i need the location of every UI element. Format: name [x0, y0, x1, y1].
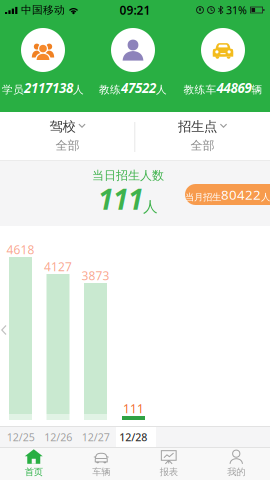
- staticText: 4618: [6, 241, 34, 257]
- staticText: 招生点: [178, 118, 217, 135]
- button[interactable]: 招生点: [135, 112, 270, 161]
- button[interactable]: 车辆: [67, 447, 135, 480]
- button[interactable]: 当月招生80422人: [185, 184, 270, 205]
- staticText: 3873: [81, 267, 109, 283]
- staticText: 教练车44869辆: [183, 79, 262, 97]
- button[interactable]: 驾校: [0, 112, 135, 161]
- staticText: 当日招生人数: [92, 168, 164, 183]
- staticText: 12/27: [82, 430, 110, 444]
- staticText: 学员2117138人: [2, 79, 84, 97]
- staticText: 教练47522人: [99, 79, 167, 97]
- staticText: 全部: [190, 138, 214, 153]
- staticText: 4127: [44, 258, 72, 274]
- staticText: 12/25: [7, 430, 35, 444]
- staticText: 12/26: [44, 430, 72, 444]
- staticText: 当月招生80422人: [185, 186, 270, 203]
- staticText: 驾校: [49, 118, 75, 135]
- staticText: 我的: [227, 466, 245, 478]
- staticText: 首页: [25, 466, 43, 478]
- button[interactable]: 我的: [202, 447, 270, 480]
- button[interactable]: 报表: [135, 447, 202, 480]
- staticText: 报表: [160, 466, 178, 478]
- staticText: 12/28: [119, 430, 147, 444]
- staticText: 全部: [55, 138, 79, 153]
- button[interactable]: 首页: [0, 447, 67, 480]
- staticText: 09:21: [119, 2, 150, 18]
- button[interactable]: 12/26: [39, 427, 77, 447]
- staticText: 111人: [98, 180, 158, 218]
- button[interactable]: 12/25: [2, 427, 39, 447]
- staticText: 111: [123, 400, 144, 416]
- button[interactable]: 12/27: [77, 427, 114, 447]
- staticText: 车辆: [92, 466, 110, 478]
- staticText: 中国移动: [21, 3, 65, 16]
- staticText: 31%: [226, 3, 247, 17]
- button[interactable]: 12/28: [114, 427, 152, 447]
